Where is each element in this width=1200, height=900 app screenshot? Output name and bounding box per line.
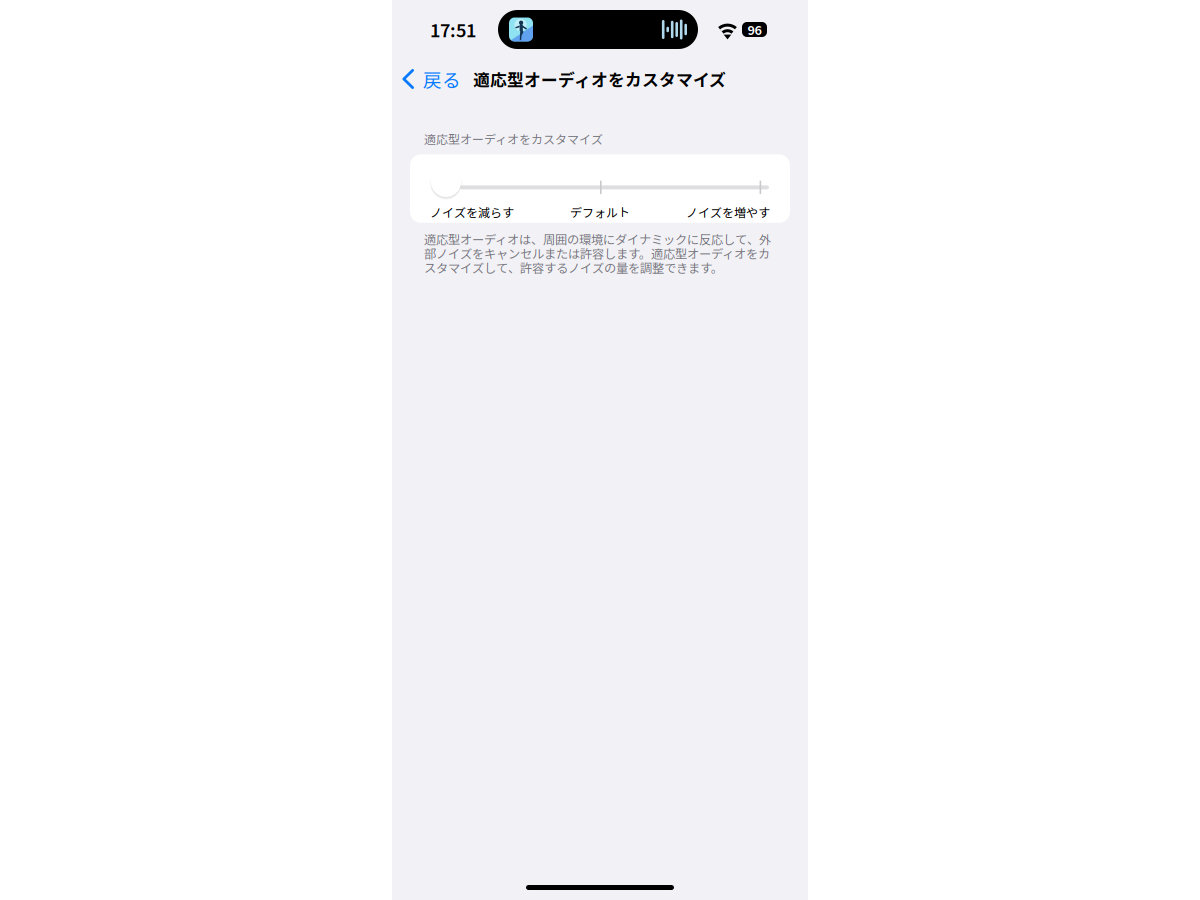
staticText: 96 [747, 20, 761, 39]
staticText: 適応型オーディオは、周囲の環境にダイナミックに反応して、外部ノイズをキャンセルま… [424, 232, 771, 274]
staticText: ノイズを増やす [686, 203, 770, 221]
staticText: 適応型オーディオをカスタマイズ [424, 130, 603, 147]
staticText: 戻る [423, 65, 461, 92]
staticText: ノイズを減らす [430, 203, 514, 221]
staticText: 適応型オーディオをカスタマイズ [473, 67, 726, 91]
button[interactable]: 戻る [392, 57, 461, 100]
button[interactable]: ノイズレベル [430, 165, 462, 210]
staticText: 17:51 [430, 16, 476, 43]
staticText: デフォルト [570, 203, 630, 221]
